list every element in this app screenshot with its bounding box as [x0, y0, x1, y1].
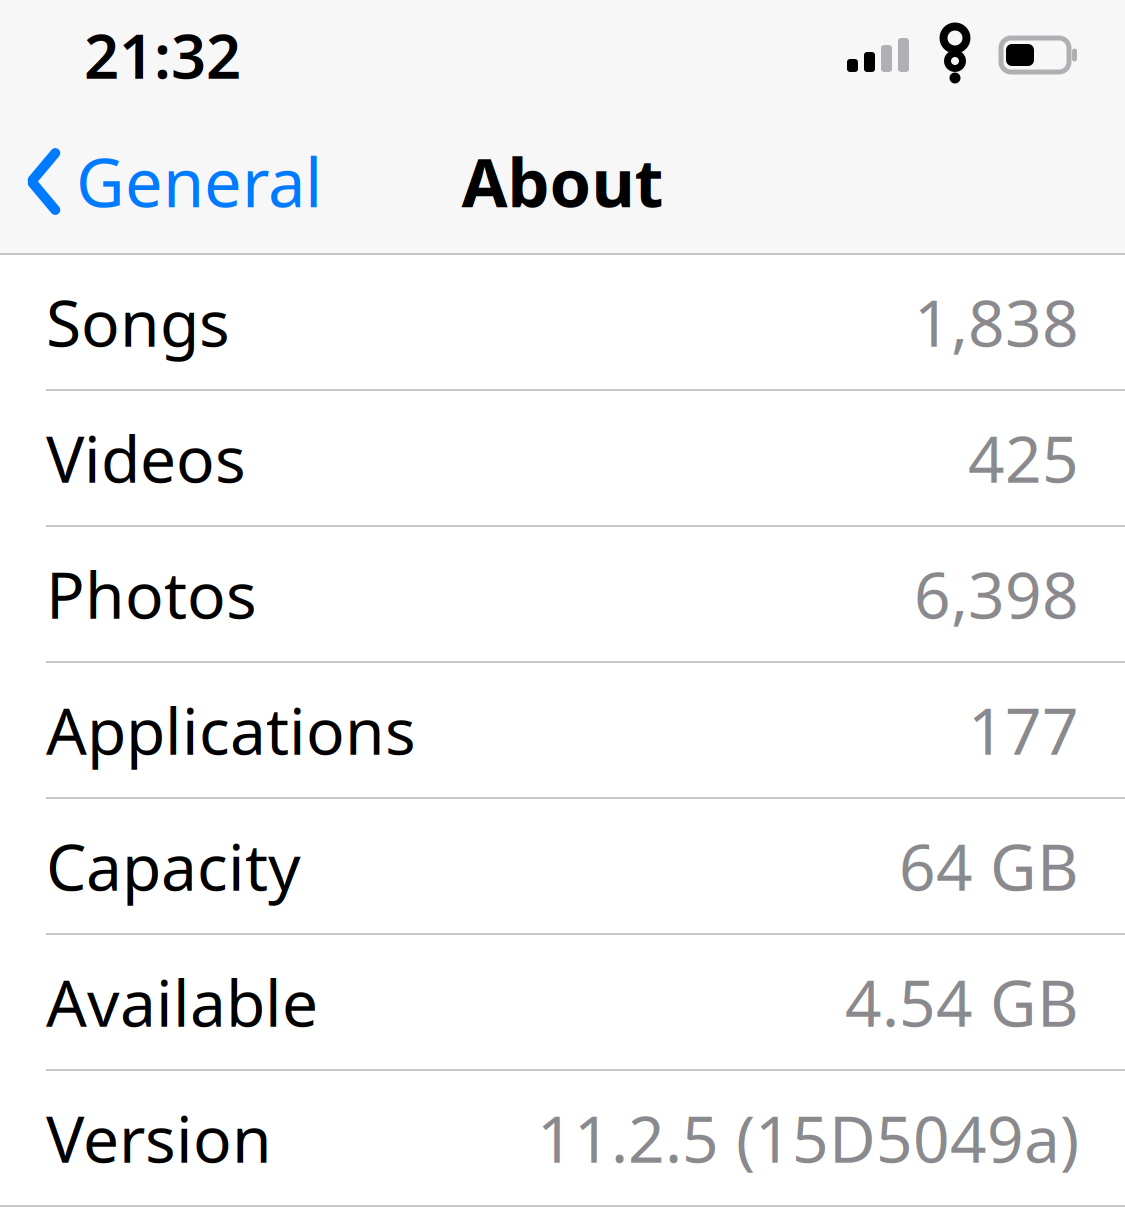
staticText: Videos — [46, 415, 246, 500]
staticText: 4.54 GB — [845, 959, 1079, 1044]
staticText: 64 GB — [899, 823, 1079, 908]
staticText: 6,398 — [914, 551, 1079, 636]
staticText: Capacity — [46, 823, 301, 908]
button[interactable]: Applications — [0, 663, 1125, 797]
staticText: Version — [46, 1095, 272, 1180]
staticText: Available — [46, 959, 318, 1044]
staticText: 425 — [968, 415, 1079, 500]
staticText: General — [76, 137, 322, 226]
button[interactable]: Videos — [0, 391, 1125, 525]
button[interactable]: Available — [0, 935, 1125, 1069]
button[interactable]: Version — [0, 1071, 1125, 1205]
staticText: 177 — [968, 687, 1079, 772]
staticText: 21:32 — [84, 14, 241, 96]
staticText: About — [461, 137, 663, 226]
button[interactable]: Capacity — [0, 799, 1125, 933]
staticText: Songs — [46, 279, 230, 364]
staticText: Photos — [46, 551, 257, 636]
button[interactable]: Photos — [0, 527, 1125, 661]
button[interactable]: General — [0, 121, 322, 242]
staticText: 11.2.5 (15D5049a) — [537, 1095, 1079, 1180]
staticText: 1,838 — [914, 279, 1079, 364]
staticText: Applications — [46, 687, 416, 772]
button[interactable]: Songs — [0, 255, 1125, 389]
